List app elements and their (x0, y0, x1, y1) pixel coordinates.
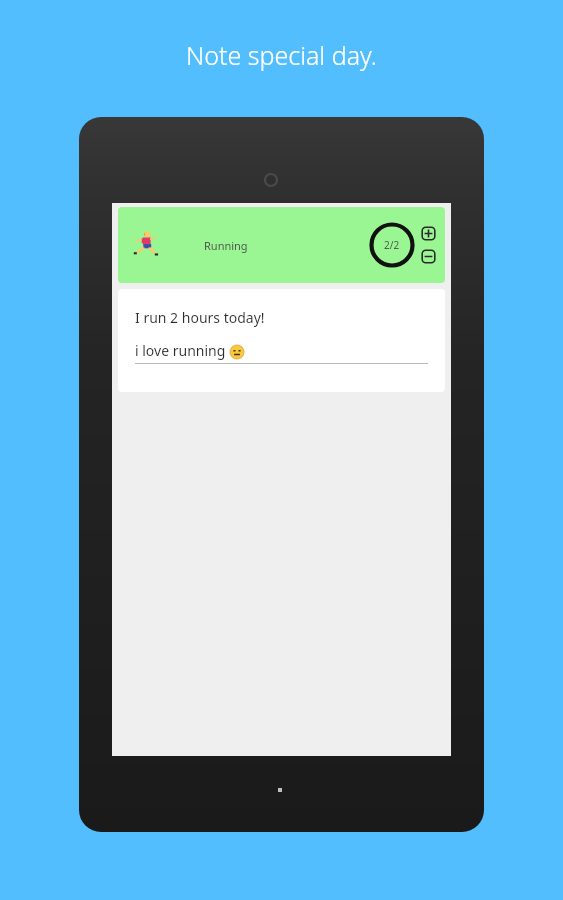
staticText: i love running (135, 341, 226, 360)
button[interactable]: Decrease (421, 249, 436, 264)
other: Smiling face (230, 345, 244, 359)
other: Runner (132, 230, 162, 260)
button[interactable]: I run 2 hours today! (118, 289, 445, 392)
button[interactable]: Runner (118, 207, 445, 283)
staticText: Note special day. (186, 38, 377, 72)
staticText: Running (204, 238, 248, 253)
button[interactable]: Increase (421, 226, 436, 241)
button[interactable]: Progress 2 of 2 (369, 222, 415, 268)
staticText: I run 2 hours today! (135, 308, 265, 327)
staticText: 2/2 (384, 238, 400, 252)
